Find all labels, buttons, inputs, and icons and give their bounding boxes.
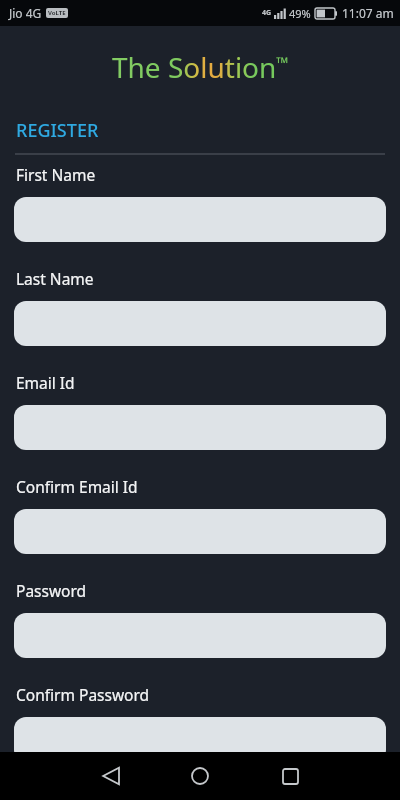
staticText: Confirm Password <box>16 684 150 705</box>
button[interactable] <box>14 405 386 450</box>
staticText: Password <box>16 580 87 601</box>
button[interactable] <box>14 197 386 242</box>
staticText: 4G <box>262 8 272 18</box>
staticText: Email Id <box>16 372 75 393</box>
staticText: First Name <box>16 164 96 185</box>
button[interactable] <box>14 509 386 554</box>
button[interactable] <box>14 613 386 658</box>
staticText: The Solution™ <box>112 48 289 86</box>
staticText: Confirm Email Id <box>16 476 138 497</box>
button[interactable] <box>14 717 386 762</box>
staticText: VoLTE <box>48 9 66 17</box>
button[interactable] <box>79 752 141 800</box>
button[interactable] <box>169 752 231 800</box>
staticText: REGISTER <box>16 118 99 143</box>
staticText: Jio 4G <box>9 5 42 21</box>
button[interactable] <box>259 752 321 800</box>
staticText: 11:07 am <box>342 5 394 21</box>
staticText: 49% <box>289 6 311 21</box>
staticText: Last Name <box>16 268 94 289</box>
button[interactable] <box>14 301 386 346</box>
